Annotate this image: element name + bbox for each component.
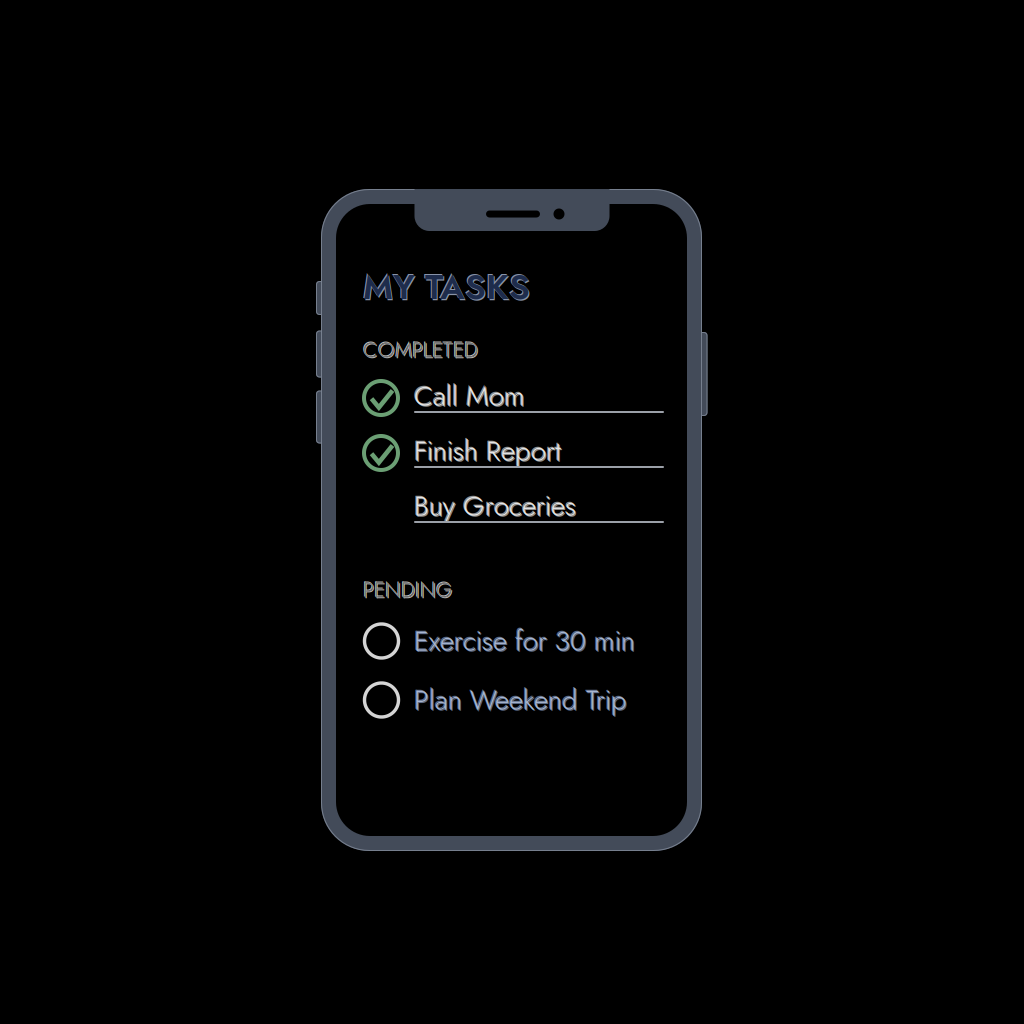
- staticText: MY TASKS: [362, 261, 529, 311]
- staticText: Buy Groceries: [413, 485, 575, 525]
- button[interactable]: Buy Groceries: [356, 483, 664, 533]
- staticText: Plan Weekend Trip: [413, 679, 626, 719]
- staticText: Exercise for 30 min: [415, 622, 636, 662]
- staticText: Exercise for 30 min: [413, 620, 634, 660]
- button[interactable]: Plan Weekend Trip: [356, 675, 664, 725]
- staticText: PENDING: [364, 575, 453, 606]
- button[interactable]: Call Mom: [356, 373, 664, 423]
- staticText: Finish Report: [414, 431, 561, 471]
- staticText: COMPLETED: [364, 335, 479, 366]
- staticText: COMPLETED: [362, 334, 477, 365]
- staticText: Buy Groceries: [414, 486, 576, 526]
- staticText: COMPLETED: [363, 335, 478, 365]
- staticText: Plan Weekend Trip: [414, 680, 627, 720]
- staticText: Plan Weekend Trip: [415, 681, 628, 721]
- button[interactable]: Finish Report: [356, 428, 664, 478]
- staticText: Call Mom: [414, 376, 525, 416]
- staticText: Exercise for 30 min: [414, 621, 635, 661]
- staticText: PENDING: [362, 574, 451, 605]
- staticText: Finish Report: [413, 430, 560, 470]
- button[interactable]: Exercise for 30 min: [356, 616, 664, 666]
- staticText: PENDING: [363, 575, 452, 605]
- staticText: Call Mom: [413, 375, 524, 415]
- staticText: Finish Report: [415, 432, 562, 472]
- staticText: Buy Groceries: [415, 487, 577, 527]
- staticText: MY TASKS: [364, 263, 531, 313]
- staticText: Call Mom: [415, 377, 526, 417]
- staticText: MY TASKS: [363, 262, 530, 312]
